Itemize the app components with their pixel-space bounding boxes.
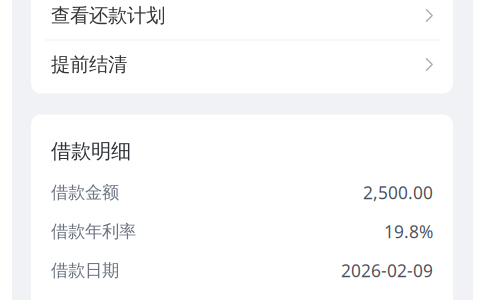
- button[interactable]: 查看还款计划: [31, 0, 453, 39]
- staticText: 2026-02-09: [341, 259, 433, 282]
- staticText: 借款年利率: [51, 221, 136, 242]
- staticText: 借款明细: [51, 138, 131, 164]
- staticText: 提前结清: [51, 52, 127, 77]
- staticText: 查看还款计划: [51, 3, 165, 28]
- staticText: 借款日期: [51, 260, 119, 281]
- staticText: 19.8%: [384, 220, 433, 243]
- button[interactable]: 提前结清: [31, 40, 453, 88]
- staticText: 2,500.00: [363, 181, 433, 204]
- staticText: 借款金额: [51, 182, 119, 203]
